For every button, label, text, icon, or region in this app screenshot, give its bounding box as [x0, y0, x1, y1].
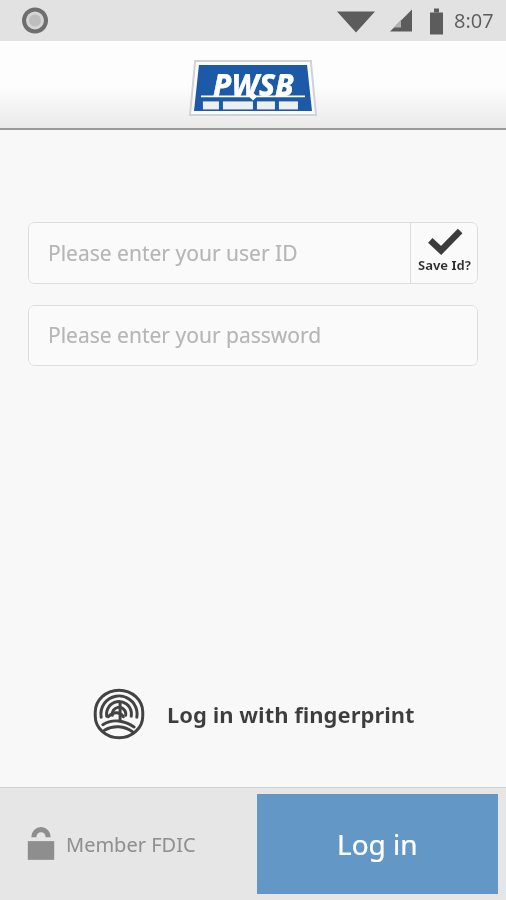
staticText: Save Id?: [418, 256, 471, 274]
button[interactable]: Member FDIC: [26, 826, 196, 862]
button[interactable]: Please enter your user ID: [28, 222, 410, 284]
button[interactable]: Log in: [257, 794, 498, 894]
button[interactable]: Save Id: [411, 222, 478, 284]
staticText: 8:07: [454, 7, 494, 34]
button[interactable]: Please enter your password: [28, 305, 478, 366]
staticText: Log in: [337, 825, 418, 863]
staticText: Member FDIC: [66, 831, 196, 858]
staticText: PWSB: [213, 64, 294, 105]
button[interactable]: PWSB Port Washington State Bank logo: [188, 59, 318, 117]
staticText: Log in with fingerprint: [167, 699, 415, 729]
staticText: Please enter your user ID: [48, 239, 298, 268]
staticText: Please enter your password: [48, 321, 322, 350]
button[interactable]: Log in with fingerprint: [0, 678, 506, 750]
